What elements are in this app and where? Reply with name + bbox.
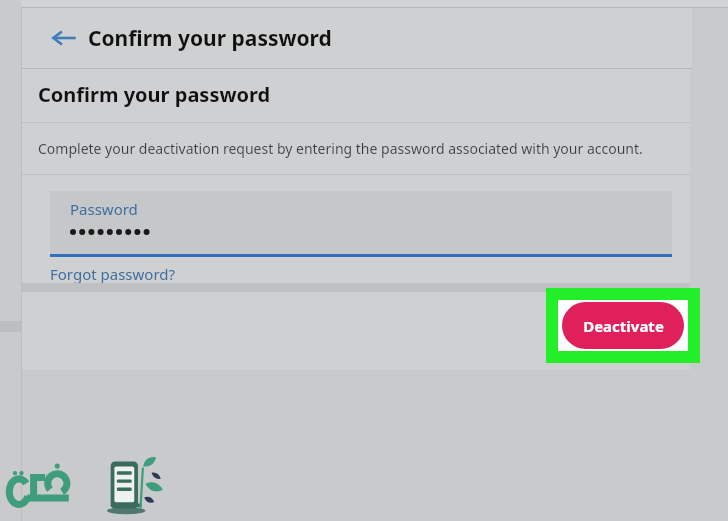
staticText: Password [70,199,138,219]
button[interactable]: Password [50,191,672,254]
button[interactable]: Back [42,16,86,60]
button[interactable]: Deactivate [546,288,700,363]
staticText: Confirm your password [38,81,271,108]
staticText: Deactivate [583,316,664,336]
button[interactable]: Forgot password? [50,264,176,283]
staticText: Confirm your password [88,24,332,53]
staticText: Forgot password? [50,264,176,283]
staticText: Complete your deactivation request by en… [38,139,643,158]
